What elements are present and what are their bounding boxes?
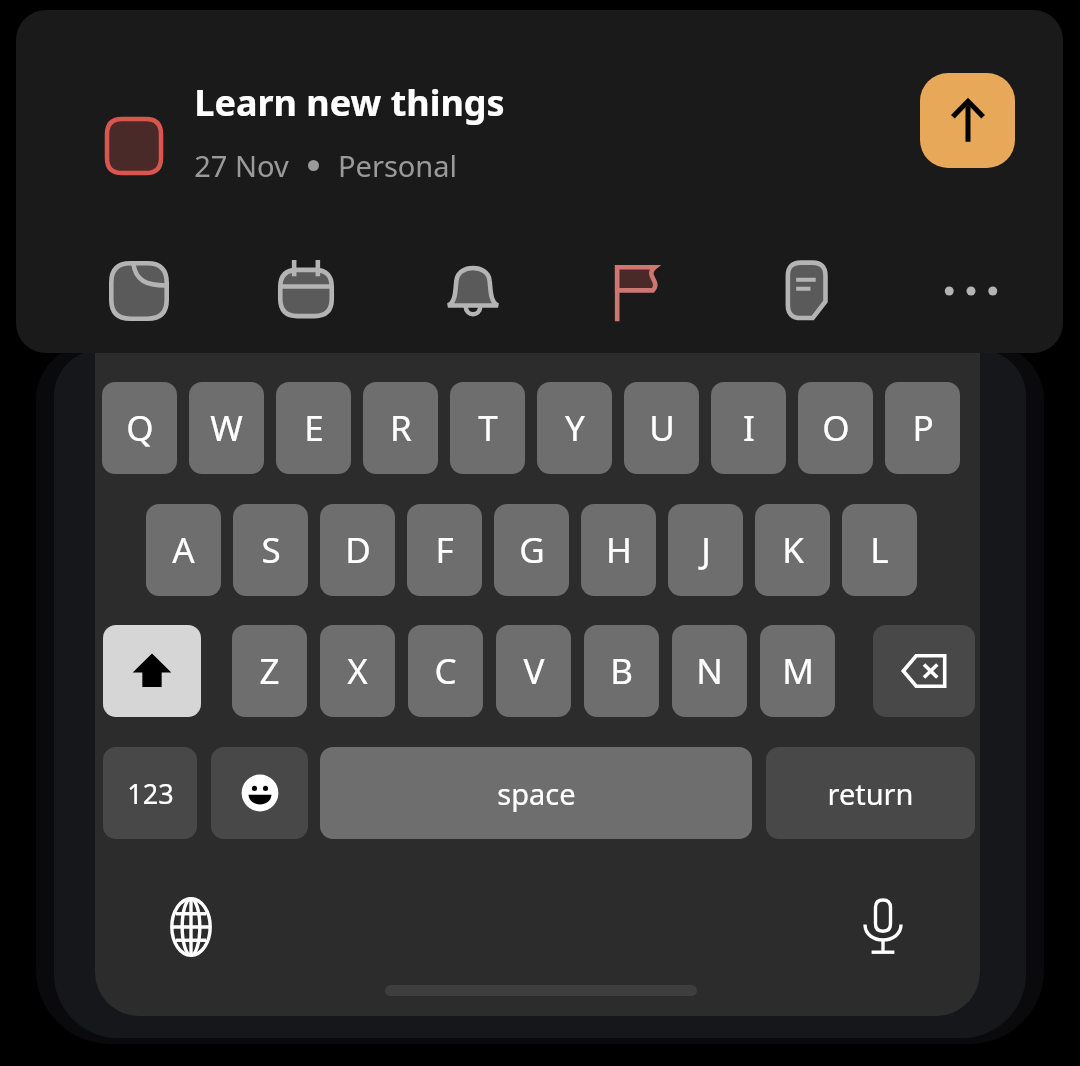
button[interactable]: H <box>581 504 656 596</box>
button[interactable]: Reminder <box>415 233 531 349</box>
staticText: L <box>870 526 889 574</box>
staticText: G <box>519 526 545 574</box>
staticText: O <box>822 404 850 452</box>
button[interactable]: return <box>766 747 975 839</box>
staticText: V <box>523 647 545 695</box>
button[interactable]: Change keyboard <box>148 884 234 970</box>
button[interactable]: Q <box>102 382 177 474</box>
button[interactable]: I <box>711 382 786 474</box>
button[interactable]: Backspace <box>873 625 975 717</box>
button[interactable]: Tag <box>81 233 197 349</box>
button[interactable]: X <box>320 625 395 717</box>
staticText: R <box>390 404 412 452</box>
button[interactable]: V <box>496 625 571 717</box>
button[interactable]: Y <box>537 382 612 474</box>
staticText: T <box>478 404 498 452</box>
button[interactable]: R <box>363 382 438 474</box>
staticText: F <box>435 526 454 574</box>
staticText: W <box>210 404 243 452</box>
button[interactable]: D <box>320 504 395 596</box>
button[interactable]: W <box>189 382 264 474</box>
staticText: Y <box>565 404 585 452</box>
button[interactable]: G <box>494 504 569 596</box>
staticText: N <box>696 647 723 695</box>
button[interactable]: N <box>672 625 747 717</box>
button[interactable]: K <box>755 504 830 596</box>
button[interactable]: F <box>407 504 482 596</box>
staticText: U <box>649 404 675 452</box>
staticText: S <box>261 526 281 574</box>
button[interactable]: space <box>320 747 752 839</box>
staticText: B <box>610 647 633 695</box>
button[interactable]: Dictate <box>840 884 926 970</box>
staticText: J <box>701 526 711 574</box>
staticText: Z <box>259 647 280 695</box>
staticText: M <box>782 647 814 695</box>
button[interactable]: Z <box>232 625 307 717</box>
staticText: K <box>782 526 804 574</box>
staticText: Personal <box>338 146 457 185</box>
staticText: E <box>304 404 324 452</box>
staticText: Learn new things <box>194 78 505 127</box>
button[interactable]: S <box>233 504 308 596</box>
button[interactable]: T <box>450 382 525 474</box>
button[interactable]: Notes <box>749 233 865 349</box>
staticText: 123 <box>127 775 174 812</box>
button[interactable]: U <box>624 382 699 474</box>
staticText: H <box>606 526 632 574</box>
button[interactable]: 123 <box>103 747 197 839</box>
button[interactable]: M <box>760 625 835 717</box>
staticText: C <box>434 647 457 695</box>
button[interactable]: J <box>668 504 743 596</box>
button[interactable]: Due date <box>248 233 364 349</box>
button[interactable]: Shift <box>103 625 201 717</box>
staticText: return <box>827 774 914 813</box>
staticText: P <box>912 404 934 452</box>
button[interactable]: B <box>584 625 659 717</box>
button[interactable]: L <box>842 504 917 596</box>
button[interactable]: Toggle complete <box>92 104 176 188</box>
button[interactable]: P <box>885 382 960 474</box>
button[interactable]: Priority <box>577 233 693 349</box>
button[interactable]: C <box>408 625 483 717</box>
staticText: D <box>345 526 371 574</box>
staticText: Q <box>126 404 154 452</box>
button[interactable]: Emoji <box>211 747 308 839</box>
staticText: 27 Nov <box>194 146 289 185</box>
button[interactable]: Save task <box>912 65 1023 176</box>
staticText: I <box>743 404 755 452</box>
staticText: space <box>497 774 576 813</box>
button[interactable]: More options <box>913 233 1029 349</box>
button[interactable]: E <box>276 382 351 474</box>
staticText: A <box>172 526 195 574</box>
button[interactable]: A <box>146 504 221 596</box>
button[interactable]: O <box>798 382 873 474</box>
staticText: X <box>347 647 368 695</box>
